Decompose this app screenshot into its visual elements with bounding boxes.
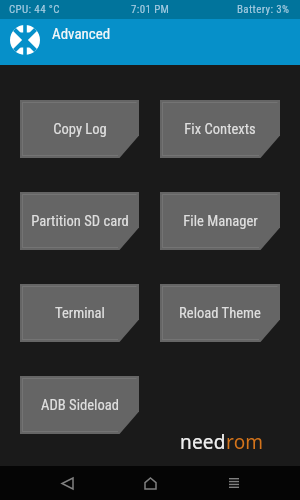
button[interactable]: ADB Sideload bbox=[20, 376, 139, 434]
staticText: Fix Contexts bbox=[184, 120, 256, 137]
staticText: Advanced bbox=[52, 25, 111, 43]
staticText: Copy Log bbox=[53, 120, 107, 137]
staticText: CPU: 44 °C bbox=[9, 3, 60, 16]
staticText: File Manager bbox=[183, 212, 258, 229]
button[interactable]: Recent apps bbox=[217, 466, 251, 500]
button[interactable]: Partition SD card bbox=[20, 192, 139, 250]
button[interactable]: Copy Log bbox=[20, 100, 139, 158]
button[interactable]: File Manager bbox=[160, 192, 280, 250]
staticText: rom bbox=[226, 429, 264, 455]
button[interactable]: Terminal bbox=[20, 284, 139, 342]
staticText: need bbox=[180, 429, 226, 455]
staticText: Terminal bbox=[55, 304, 105, 321]
button[interactable]: Fix Contexts bbox=[160, 100, 280, 158]
staticText: Battery: 3% bbox=[237, 3, 290, 16]
staticText: ADB Sideload bbox=[41, 396, 119, 413]
staticText: 7:01 PM bbox=[131, 3, 170, 16]
staticText: Partition SD card bbox=[31, 212, 129, 229]
button[interactable]: Back bbox=[50, 466, 84, 500]
staticText: Reload Theme bbox=[179, 304, 261, 321]
button[interactable]: Home bbox=[133, 466, 167, 500]
button[interactable]: Reload Theme bbox=[160, 284, 280, 342]
